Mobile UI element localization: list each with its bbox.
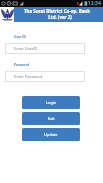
button[interactable]: Enter UserID [5, 43, 85, 54]
staticText: User ID [14, 35, 26, 39]
staticText: Enter Password [14, 74, 43, 79]
button[interactable]: Update [22, 128, 80, 141]
staticText: Enter UserID [14, 46, 38, 51]
staticText: The Surat District Co-op. Bank [24, 8, 90, 14]
staticText: Exit [48, 116, 55, 121]
button[interactable]: Login [22, 96, 80, 109]
staticText: Password [14, 63, 30, 67]
staticText: 12:34 [88, 0, 101, 7]
button[interactable]: Enter Password [5, 71, 85, 82]
staticText: Ltd. (ver 2) [48, 14, 72, 20]
staticText: Update [44, 132, 58, 137]
button[interactable]: Exit [22, 112, 80, 125]
staticText: Login [46, 100, 57, 105]
